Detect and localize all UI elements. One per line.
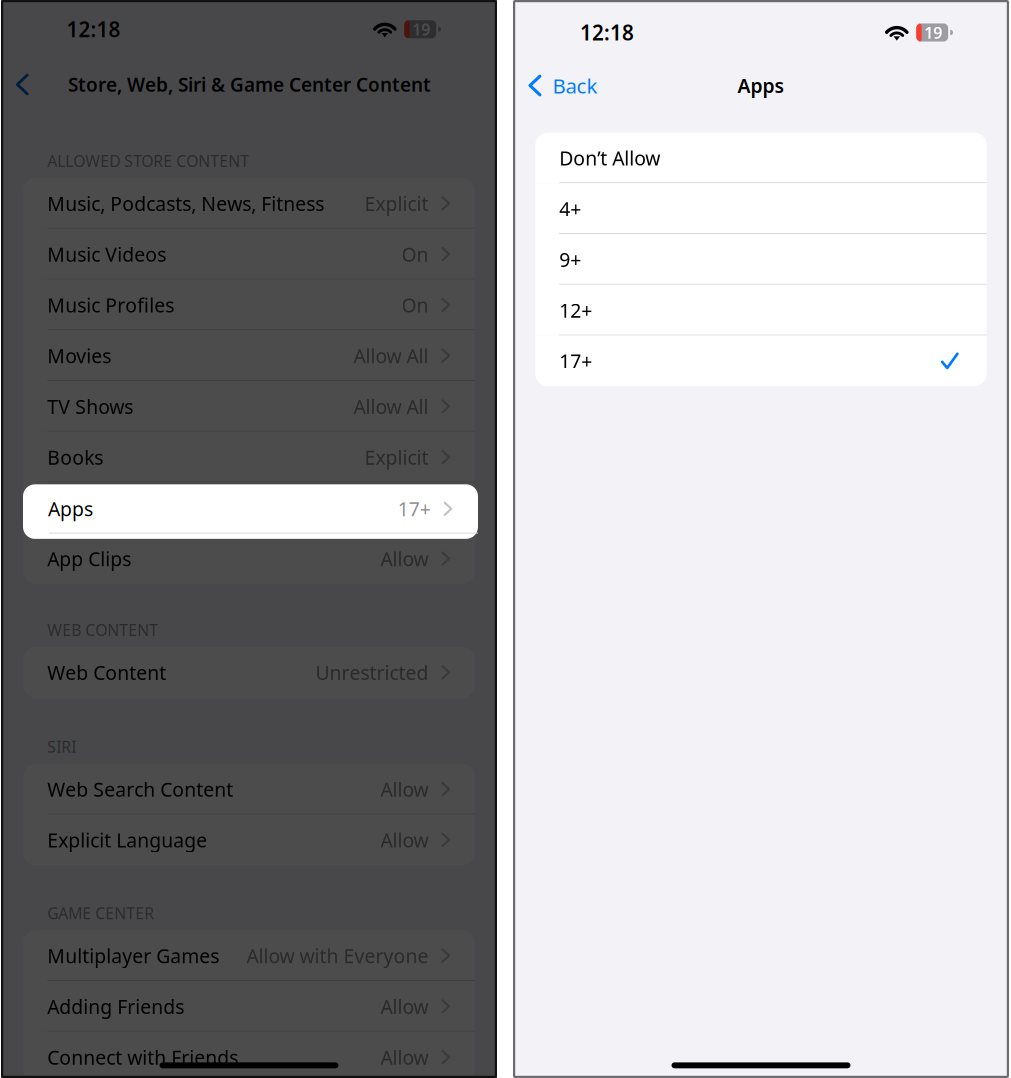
button[interactable]: Back [1, 61, 37, 107]
staticText: 19 [924, 22, 942, 43]
button[interactable]: Music Videos [23, 229, 475, 280]
staticText: Allow [381, 545, 429, 572]
button[interactable]: Music Profiles [23, 279, 475, 330]
button[interactable]: 4+ [535, 183, 987, 234]
staticText: Store, Web, Siri & Game Center Content [68, 72, 431, 97]
staticText: Allow [381, 1044, 429, 1070]
staticText: App Clips [47, 545, 131, 572]
button[interactable]: Movies [23, 330, 475, 381]
button[interactable]: Web Content [23, 647, 475, 698]
staticText: 12+ [559, 297, 592, 323]
staticText: 17+ [559, 348, 592, 374]
staticText: Unrestricted [316, 659, 429, 685]
staticText: Music Profiles [47, 292, 174, 318]
staticText: 9+ [559, 246, 581, 272]
staticText: Don’t Allow [559, 145, 660, 171]
staticText: On [402, 241, 429, 267]
staticText: Music, Podcasts, News, Fitness [47, 190, 324, 216]
staticText: Allow with Everyone [247, 942, 429, 969]
staticText: ALLOWED STORE CONTENT [47, 150, 249, 172]
staticText: Explicit [365, 190, 429, 216]
staticText: Music Videos [47, 241, 166, 267]
button[interactable]: Don’t Allow [535, 132, 987, 183]
staticText: Apps [47, 495, 92, 521]
staticText: Web Content [47, 659, 166, 685]
staticText: Explicit Language [47, 827, 207, 853]
staticText: 4+ [559, 195, 581, 222]
staticText: Books [47, 444, 103, 470]
staticText: GAME CENTER [47, 902, 154, 924]
staticText: 19 [412, 18, 430, 40]
button[interactable]: 9+ [535, 234, 987, 285]
button[interactable]: Web Search Content [23, 764, 475, 815]
staticText: On [402, 292, 429, 318]
button[interactable]: 17+ [535, 335, 987, 386]
staticText: Allow [381, 776, 429, 802]
staticText: Allow All [354, 393, 429, 419]
button[interactable]: Explicit Language [23, 814, 475, 865]
staticText: Allow [381, 993, 429, 1019]
staticText: TV Shows [47, 393, 133, 419]
staticText: Apps [48, 496, 93, 522]
button[interactable]: Back [513, 62, 611, 108]
staticText: 12:18 [66, 15, 120, 43]
staticText: Movies [47, 342, 111, 369]
staticText: Connect with Friends [47, 1044, 238, 1070]
staticText: 17+ [398, 496, 431, 522]
button[interactable]: TV Shows [23, 381, 475, 432]
button[interactable]: Apps [23, 484, 478, 539]
staticText: Allow [381, 827, 429, 853]
staticText: Explicit [365, 444, 429, 470]
staticText: Apps [737, 72, 784, 99]
button[interactable]: Connect with Friends [23, 1032, 475, 1078]
staticText: Back [552, 72, 597, 99]
staticText: Multiplayer Games [47, 942, 219, 969]
staticText: WEB CONTENT [47, 619, 158, 641]
button[interactable]: Multiplayer Games [23, 930, 475, 981]
staticText: Adding Friends [47, 993, 184, 1019]
button[interactable]: Books [23, 432, 475, 483]
button[interactable]: App Clips [23, 533, 475, 584]
staticText: Allow All [354, 342, 429, 369]
button[interactable]: Music, Podcasts, News, Fitness [23, 178, 475, 229]
staticText: 17+ [396, 495, 429, 521]
button[interactable]: Apps [23, 482, 475, 533]
button[interactable]: 12+ [535, 285, 987, 336]
button[interactable]: Adding Friends [23, 981, 475, 1032]
staticText: Web Search Content [47, 776, 233, 802]
staticText: 12:18 [580, 18, 634, 46]
staticText: SIRI [47, 736, 76, 757]
